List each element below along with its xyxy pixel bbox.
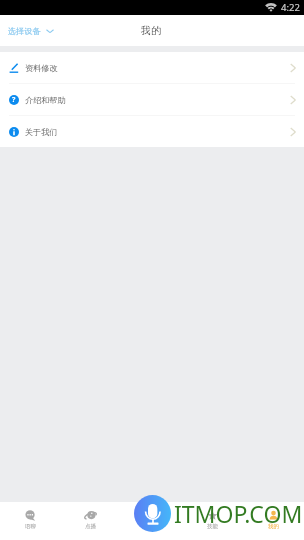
- staticText: 我的: [141, 24, 161, 37]
- staticText: 关于我们: [25, 127, 58, 137]
- staticText: 技能: [207, 523, 218, 530]
- staticText: 4:22: [281, 1, 301, 14]
- button[interactable]: 关于我们: [0, 116, 304, 147]
- staticText: 点播: [85, 523, 96, 530]
- button[interactable]: 我的: [243, 502, 304, 540]
- button[interactable]: ?: [0, 84, 304, 115]
- staticText: 资料修改: [25, 63, 58, 73]
- button[interactable]: 语聊: [0, 502, 60, 540]
- staticText: ?: [12, 95, 16, 105]
- staticText: 语聊: [25, 523, 36, 530]
- button[interactable]: 技能: [182, 502, 243, 540]
- button[interactable]: 点播: [60, 502, 121, 540]
- staticText: ITMOP.COM: [174, 498, 303, 529]
- button[interactable]: 资料修改: [0, 52, 304, 83]
- staticText: 我的: [268, 523, 279, 530]
- staticText: 选择设备: [8, 26, 41, 36]
- staticText: 介绍和帮助: [25, 95, 66, 105]
- button[interactable]: 选择设备: [0, 20, 62, 42]
- button[interactable]: Voice input: [134, 495, 171, 532]
